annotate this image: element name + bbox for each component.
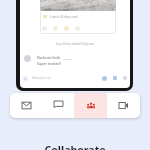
- staticText: +: [24, 76, 27, 81]
- staticText: Jenny Rivera added Holly Jones: [20, 42, 130, 46]
- button[interactable]: Chat: [42, 93, 74, 118]
- button[interactable]: Meet: [107, 93, 140, 118]
- staticText: History is on: [32, 76, 51, 80]
- staticText: Collaborate: [0, 143, 150, 150]
- button[interactable]: Spaces: [74, 93, 107, 118]
- staticText: Mackenzie Smith: [37, 56, 61, 60]
- button[interactable]: Mail: [10, 93, 42, 118]
- staticText: Liam's B-day card: [50, 14, 78, 19]
- staticText: Super excited!: [37, 61, 61, 66]
- staticText: 1:23 PM: [63, 57, 72, 60]
